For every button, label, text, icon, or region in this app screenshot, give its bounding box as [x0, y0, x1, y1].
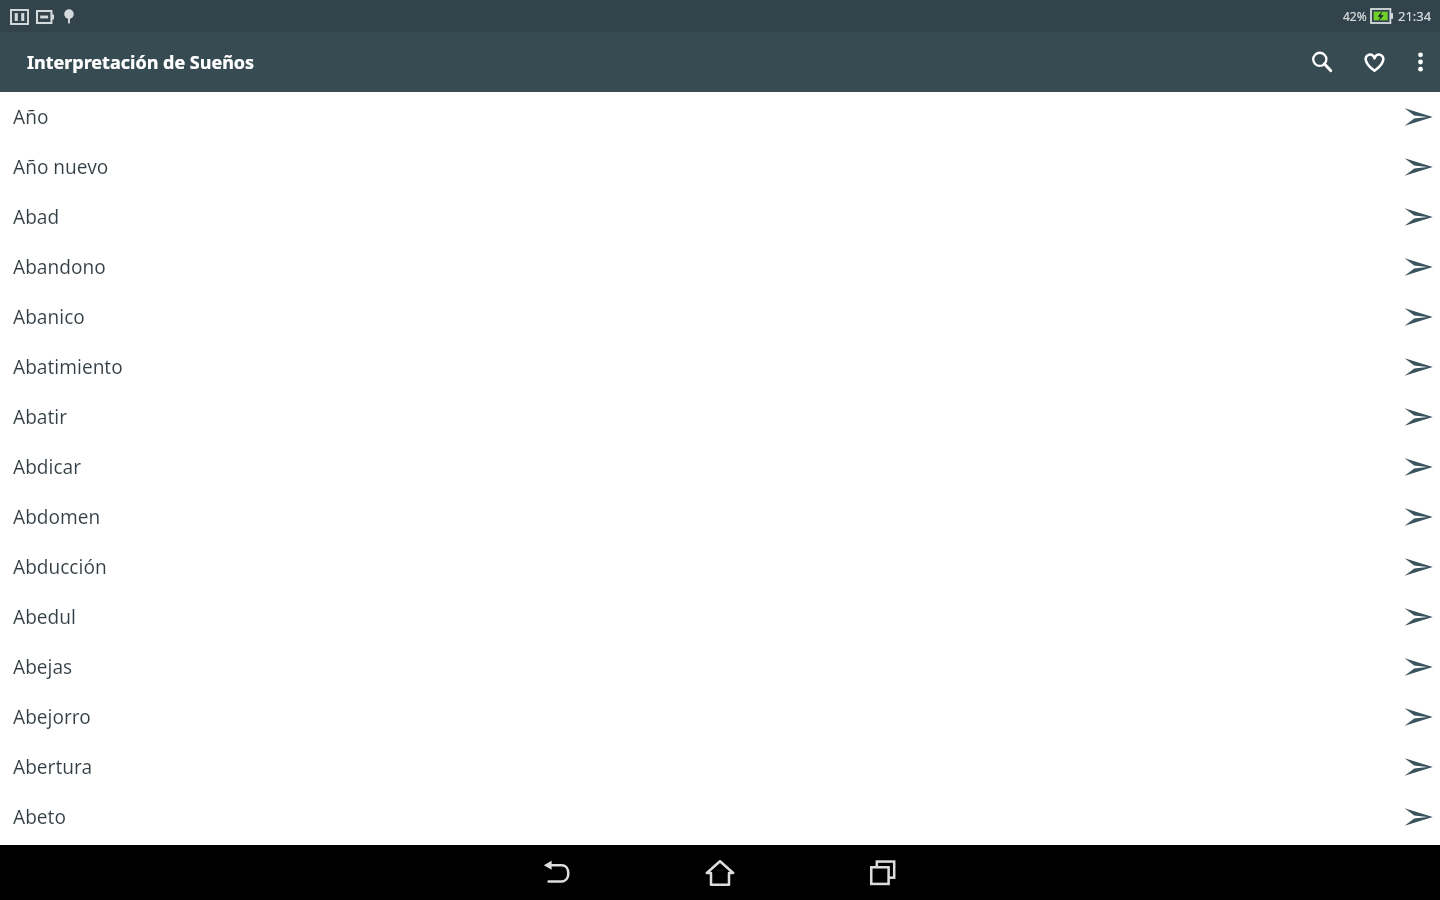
button[interactable]: Abdicar	[0, 442, 1440, 492]
button[interactable]: Abducción	[0, 542, 1440, 592]
staticText: Abdomen	[13, 504, 1398, 530]
staticText: Abducción	[13, 554, 1398, 580]
staticText: 42%	[1343, 8, 1367, 24]
staticText: Abatir	[13, 404, 1398, 430]
staticText: Abejorro	[13, 704, 1398, 730]
button[interactable]: Abejas	[0, 642, 1440, 692]
button[interactable]: Abedul	[0, 592, 1440, 642]
button[interactable]: Abejorro	[0, 692, 1440, 742]
button[interactable]: Favorites	[1348, 32, 1400, 92]
button[interactable]: Recent apps	[837, 845, 929, 900]
button[interactable]: Abertura	[0, 742, 1440, 792]
staticText: Interpretación de Sueños	[27, 50, 255, 75]
button[interactable]: Año nuevo	[0, 142, 1440, 192]
staticText: Abanico	[13, 304, 1398, 330]
button[interactable]: Home	[674, 845, 766, 900]
button[interactable]: Abatir	[0, 392, 1440, 442]
staticText: Abdicar	[13, 454, 1398, 480]
staticText: Abertura	[13, 754, 1398, 780]
button[interactable]: Año	[0, 92, 1440, 142]
staticText: 21:34	[1398, 7, 1432, 25]
staticText: Año	[13, 104, 1398, 130]
button[interactable]: Back	[511, 845, 603, 900]
button[interactable]: Abatimiento	[0, 342, 1440, 392]
button[interactable]: Abanico	[0, 292, 1440, 342]
button[interactable]: Abeto	[0, 792, 1440, 842]
staticText: Abandono	[13, 254, 1398, 280]
button[interactable]: Abdomen	[0, 492, 1440, 542]
staticText: Abeto	[13, 804, 1398, 830]
staticText: Abatimiento	[13, 354, 1398, 380]
button[interactable]: Abandono	[0, 242, 1440, 292]
staticText: Año nuevo	[13, 154, 1398, 180]
staticText: Abedul	[13, 604, 1398, 630]
staticText: Abejas	[13, 654, 1398, 680]
button[interactable]: Abad	[0, 192, 1440, 242]
button[interactable]: Search	[1296, 32, 1348, 92]
staticText: Abad	[13, 204, 1398, 230]
button[interactable]: More options	[1400, 32, 1440, 92]
